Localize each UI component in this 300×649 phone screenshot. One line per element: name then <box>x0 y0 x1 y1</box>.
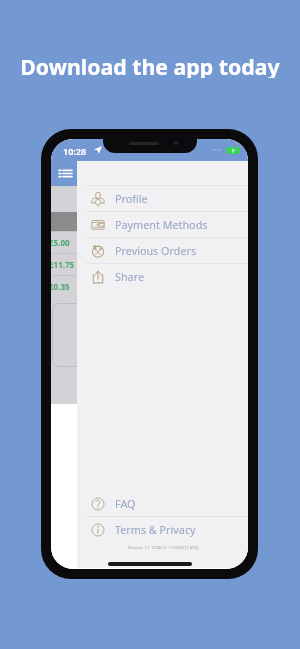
staticText: Profile <box>115 191 148 206</box>
staticText: FAQ <box>115 496 136 511</box>
button[interactable]: Menu <box>53 161 78 186</box>
staticText: £11.75 <box>51 259 75 270</box>
button[interactable]: FAQ <box>77 491 248 516</box>
button[interactable]: Previous Orders <box>77 238 248 263</box>
button[interactable]: Profile <box>77 186 248 211</box>
staticText: 10:28 <box>63 145 87 157</box>
button[interactable]: Payment Methods <box>77 212 248 237</box>
staticText: Share <box>115 269 144 284</box>
staticText: Terms & Privacy <box>115 522 196 537</box>
staticText: Version: 1.1.12342 (1.1.12342) [1,674] <box>128 545 198 550</box>
button[interactable]: Share <box>77 264 248 289</box>
staticText: Payment Methods <box>115 217 208 232</box>
staticText: Previous Orders <box>115 243 197 258</box>
staticText: Download the app today <box>20 52 280 78</box>
button[interactable]: Terms & Privacy <box>77 517 248 542</box>
staticText: £5.00 <box>51 237 70 248</box>
staticText: £0.35 <box>51 281 70 292</box>
